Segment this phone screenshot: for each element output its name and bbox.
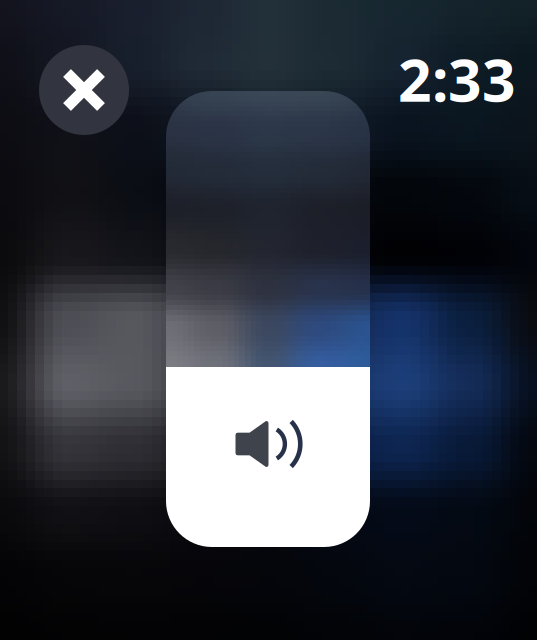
button[interactable]: Close (39, 45, 129, 135)
staticText: 2:33 (398, 40, 516, 118)
button[interactable]: Volume (166, 91, 370, 547)
